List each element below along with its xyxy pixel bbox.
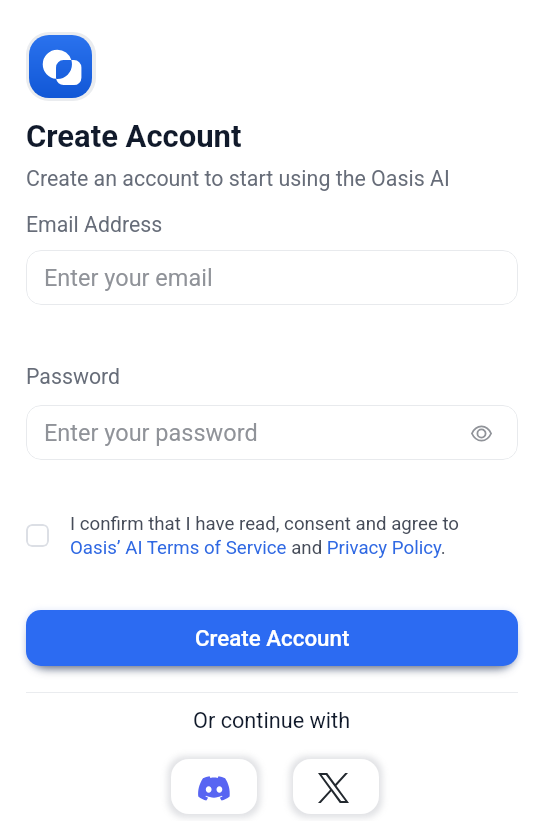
staticText: Create Account [26,118,242,154]
staticText: Enter your email [44,264,213,292]
button[interactable]: Create Account [26,610,518,666]
button[interactable]: Show password [466,418,496,448]
staticText: Create an account to start using the Oas… [26,166,450,191]
button[interactable]: Enter your email [26,250,518,305]
button[interactable]: Continue with X [293,759,379,814]
button[interactable]: Continue with Discord [171,759,257,814]
staticText: Or continue with [193,708,351,733]
staticText: Password [26,364,121,389]
other: Oasis AI logo [29,35,92,98]
staticText: Enter your password [44,419,258,447]
staticText: I confirm that I have read, consent and … [70,513,470,559]
button[interactable]: Enter your password [26,405,518,460]
staticText: Create Account [195,625,350,651]
button[interactable]: I confirm checkbox [26,524,49,547]
staticText: Email Address [26,212,163,237]
